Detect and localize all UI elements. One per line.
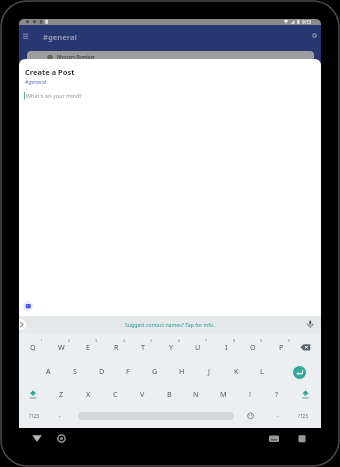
button[interactable]: A: [38, 365, 58, 377]
button[interactable]: O: [243, 341, 263, 353]
staticText: Mystery Bomber: [57, 54, 95, 60]
button[interactable]: .: [273, 409, 283, 421]
button[interactable]: !: [240, 388, 260, 400]
staticText: A: [46, 366, 51, 376]
button[interactable]: [297, 341, 314, 354]
button[interactable]: E: [78, 341, 98, 353]
staticText: D: [99, 366, 105, 376]
button[interactable]: [293, 366, 306, 379]
staticText: U: [195, 342, 201, 352]
staticText: C: [113, 389, 118, 399]
staticText: O: [250, 342, 256, 352]
button[interactable]: [266, 432, 282, 445]
staticText: S: [73, 366, 77, 376]
staticText: 0: [288, 338, 291, 343]
button[interactable]: Y: [161, 341, 181, 353]
button[interactable]: J: [199, 365, 219, 377]
staticText: 2: [68, 338, 71, 343]
staticText: M: [220, 389, 227, 399]
button[interactable]: [19, 316, 321, 333]
staticText: 9: [260, 338, 263, 343]
staticText: 8: [233, 338, 236, 343]
staticText: Z: [59, 389, 64, 399]
staticText: H: [179, 366, 185, 376]
button[interactable]: B: [159, 388, 179, 400]
button[interactable]: C: [105, 388, 125, 400]
button[interactable]: [22, 300, 35, 313]
button[interactable]: [298, 387, 312, 401]
staticText: K: [234, 366, 239, 376]
staticText: #general: [25, 79, 47, 86]
staticText: E: [86, 342, 90, 352]
button[interactable]: V: [132, 388, 152, 400]
staticText: B: [167, 389, 172, 399]
staticText: Q: [30, 342, 36, 352]
staticText: Create a Post: [25, 67, 75, 77]
button[interactable]: [29, 432, 45, 445]
staticText: L: [260, 366, 264, 376]
button[interactable]: T: [133, 341, 153, 353]
staticText: X: [86, 389, 91, 399]
staticText: Suggest contact names? Tap for info.: [125, 321, 215, 328]
staticText: ?123: [29, 413, 39, 419]
button[interactable]: ?: [267, 388, 287, 400]
button[interactable]: K: [226, 365, 246, 377]
button[interactable]: D: [92, 365, 112, 377]
staticText: #general: [43, 32, 77, 42]
button[interactable]: ?123: [293, 411, 313, 421]
staticText: !: [249, 389, 251, 399]
button[interactable]: X: [78, 388, 98, 400]
staticText: P: [279, 342, 284, 352]
button[interactable]: M: [213, 388, 233, 400]
button[interactable]: S: [65, 365, 85, 377]
staticText: 6: [178, 338, 181, 343]
staticText: 9:13: [302, 19, 312, 25]
staticText: .: [277, 411, 279, 419]
button[interactable]: R: [106, 341, 126, 353]
staticText: F: [126, 366, 130, 376]
staticText: 5: [150, 338, 153, 343]
staticText: T: [141, 342, 145, 352]
staticText: G: [152, 366, 158, 376]
staticText: J: [208, 366, 210, 376]
button[interactable]: [20, 29, 32, 43]
button[interactable]: I: [216, 341, 236, 353]
button[interactable]: [243, 409, 257, 423]
staticText: R: [114, 342, 119, 352]
button[interactable]: P: [271, 341, 291, 353]
button[interactable]: L: [252, 365, 272, 377]
staticText: V: [140, 389, 145, 399]
staticText: Y: [169, 342, 174, 352]
button[interactable]: [308, 29, 321, 42]
button[interactable]: [296, 432, 308, 445]
button[interactable]: H: [172, 365, 192, 377]
button[interactable]: U: [188, 341, 208, 353]
staticText: What's on your mind?: [26, 92, 82, 99]
button[interactable]: N: [186, 388, 206, 400]
staticText: 3: [95, 338, 98, 343]
button[interactable]: F: [118, 365, 138, 377]
button[interactable]: [54, 432, 69, 445]
staticText: ?123: [298, 413, 308, 419]
staticText: W: [58, 342, 65, 352]
button[interactable]: G: [145, 365, 165, 377]
button[interactable]: [26, 387, 40, 401]
staticText: 7: [205, 338, 208, 343]
button[interactable]: Z: [51, 388, 71, 400]
button[interactable]: ?123: [24, 411, 44, 421]
staticText: ,: [59, 411, 61, 419]
button[interactable]: Q: [23, 341, 43, 353]
staticText: ?: [275, 389, 279, 399]
staticText: I: [225, 342, 228, 352]
staticText: N: [193, 389, 199, 399]
staticText: 1: [40, 338, 43, 343]
button[interactable]: ,: [55, 409, 65, 421]
button[interactable]: [303, 318, 316, 331]
button[interactable]: W: [51, 341, 71, 353]
staticText: 4: [123, 338, 126, 343]
